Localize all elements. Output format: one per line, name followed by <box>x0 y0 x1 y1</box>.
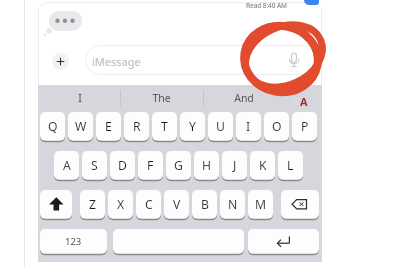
button[interactable] <box>113 229 244 254</box>
button[interactable]: J <box>222 151 247 180</box>
staticText: K <box>259 157 267 174</box>
button[interactable]: U <box>208 112 233 141</box>
button[interactable]: Y <box>180 112 205 141</box>
button[interactable]: V <box>164 190 189 219</box>
staticText: R <box>133 118 141 135</box>
staticText: 123 <box>65 235 82 248</box>
button[interactable]: X <box>108 190 133 219</box>
staticText: P <box>301 118 309 135</box>
button[interactable] <box>85 45 319 75</box>
button[interactable] <box>52 53 69 70</box>
button[interactable] <box>281 190 319 219</box>
staticText: iMessage <box>92 54 141 69</box>
staticText: B <box>201 196 209 213</box>
button[interactable]: W <box>68 112 93 141</box>
staticText: Y <box>189 118 196 135</box>
staticText: S <box>91 157 98 174</box>
staticText: D <box>118 157 127 174</box>
button[interactable]: Q <box>40 112 65 141</box>
button[interactable]: L <box>278 151 303 180</box>
staticText: W <box>75 118 87 135</box>
button[interactable]: B <box>192 190 217 219</box>
staticText: O <box>272 118 282 135</box>
button[interactable]: C <box>136 190 161 219</box>
staticText: H <box>202 157 212 174</box>
button[interactable]: M <box>248 190 273 219</box>
button[interactable]: P <box>292 112 317 141</box>
button[interactable]: O <box>264 112 289 141</box>
staticText: A <box>300 94 308 109</box>
staticText: And <box>234 91 254 105</box>
button[interactable]: A <box>54 151 79 180</box>
staticText: G <box>174 157 183 174</box>
button[interactable]: S <box>82 151 107 180</box>
button[interactable] <box>248 229 319 254</box>
button[interactable]: D <box>110 151 135 180</box>
staticText: Z <box>89 196 96 213</box>
staticText: X <box>117 196 125 213</box>
staticText: E <box>105 118 112 135</box>
button[interactable]: Z <box>80 190 105 219</box>
staticText: J <box>233 157 237 174</box>
staticText: C <box>145 196 153 213</box>
staticText: I <box>246 118 251 135</box>
button[interactable]: T <box>152 112 177 141</box>
button[interactable]: R <box>124 112 149 141</box>
button[interactable]: F <box>138 151 163 180</box>
button[interactable]: G <box>166 151 191 180</box>
staticText: The <box>152 91 171 105</box>
staticText: T <box>161 118 168 135</box>
staticText: F <box>147 157 154 174</box>
staticText: I <box>78 91 82 105</box>
button[interactable]: The <box>121 85 202 111</box>
staticText: U <box>216 118 225 135</box>
button[interactable]: And <box>203 85 284 111</box>
staticText: V <box>173 196 181 213</box>
button[interactable] <box>40 190 72 219</box>
button[interactable]: E <box>96 112 121 141</box>
button[interactable]: I <box>40 85 120 111</box>
staticText: N <box>228 196 238 213</box>
button[interactable]: I <box>236 112 261 141</box>
staticText: A <box>63 157 71 174</box>
button[interactable]: N <box>220 190 245 219</box>
staticText: Q <box>48 118 58 135</box>
staticText: Read 8:40 AM <box>246 1 287 10</box>
button[interactable]: 123 <box>40 229 107 254</box>
staticText: L <box>287 157 294 174</box>
button[interactable]: K <box>250 151 275 180</box>
button[interactable]: H <box>194 151 219 180</box>
staticText: M <box>255 196 267 213</box>
